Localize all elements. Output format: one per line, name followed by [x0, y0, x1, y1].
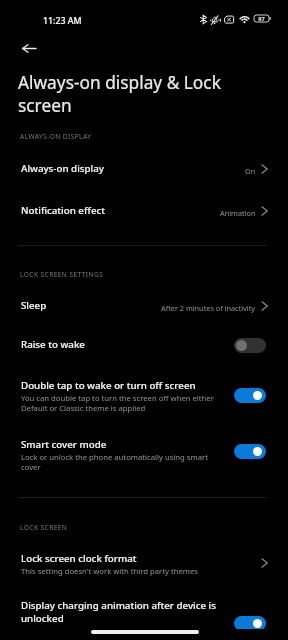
staticText: LOCK SCREEN: [20, 523, 68, 532]
staticText: Raise to wake: [21, 338, 237, 351]
staticText: 97: [258, 15, 265, 22]
button[interactable]: Toggle on: [234, 444, 266, 459]
button[interactable]: Notification effect: [0, 195, 288, 228]
staticText: Lock screen clock format: [21, 552, 137, 565]
staticText: 11:23 AM: [43, 15, 82, 27]
staticText: Double tap to wake or turn off screen: [21, 379, 237, 392]
staticText: Animation: [220, 208, 256, 218]
button[interactable]: Toggle on: [234, 616, 266, 631]
staticText: LOCK SCREEN SETTINGS: [20, 270, 104, 279]
staticText: Always-on display & Lock screen: [18, 71, 233, 117]
button[interactable]: Display charging animation after device …: [0, 592, 288, 632]
staticText: Display charging animation after device …: [21, 599, 237, 625]
staticText: You can double tap to turn the screen of…: [21, 393, 237, 413]
staticText: After 2 minutes of inactivity: [161, 303, 256, 313]
button[interactable]: Raise to wake: [0, 331, 288, 361]
staticText: On: [245, 166, 256, 176]
button[interactable]: Lock screen clock format: [0, 545, 288, 585]
staticText: Lock or unlock the phone automatically u…: [21, 452, 237, 472]
button[interactable]: Always-on display: [0, 153, 288, 186]
staticText: Always-on display: [21, 162, 104, 175]
staticText: Smart cover mode: [21, 438, 237, 451]
button[interactable]: Sleep: [0, 290, 288, 323]
staticText: This setting doesn't work with third par…: [21, 566, 231, 576]
button[interactable]: Back: [14, 34, 43, 63]
button[interactable]: Toggle on: [234, 388, 266, 403]
button[interactable]: Double tap to wake or turn off screen: [0, 372, 288, 420]
button[interactable]: Smart cover mode: [0, 431, 288, 479]
staticText: Sleep: [21, 299, 47, 312]
staticText: ALWAYS-ON DISPLAY: [20, 132, 92, 141]
staticText: Notification effect: [21, 204, 105, 217]
button[interactable]: Toggle off: [234, 338, 266, 353]
